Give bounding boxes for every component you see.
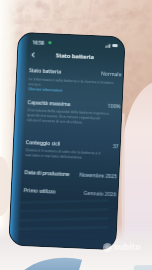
staticText: Data di produzione bbox=[24, 169, 70, 178]
staticText: Novembre 2025 bbox=[79, 172, 118, 180]
staticText: 16:58 bbox=[32, 39, 45, 46]
staticText: Le informazioni sulla batteria e la rica… bbox=[28, 76, 114, 90]
staticText: Conteggio cicli bbox=[26, 139, 61, 148]
staticText: subito bbox=[114, 241, 141, 253]
staticText: Gennaio 2026 bbox=[83, 190, 117, 198]
staticText: Stato batteria bbox=[56, 51, 95, 61]
staticText: 37 bbox=[113, 143, 119, 150]
button[interactable]: Back bbox=[29, 50, 38, 60]
staticText: Una misura della capacità della batteria… bbox=[27, 107, 109, 126]
staticText: Stato batteria bbox=[29, 67, 61, 76]
button[interactable]: Stato batteria bbox=[29, 66, 122, 78]
staticText: Primo utilizzo bbox=[23, 187, 56, 195]
staticText: 100% bbox=[107, 103, 121, 110]
staticText: Normale bbox=[101, 70, 122, 78]
staticText: Capacità massima bbox=[27, 99, 71, 108]
button[interactable]: Primo utilizzo bbox=[23, 186, 117, 198]
button[interactable]: Data di produzione bbox=[24, 168, 118, 180]
staticText: Ulteriori informazioni bbox=[28, 86, 63, 93]
button[interactable]: Conteggio cicli bbox=[26, 138, 119, 150]
staticText: Questo è il numero di volte che la batte… bbox=[25, 147, 102, 160]
button[interactable]: Capacità massima bbox=[27, 98, 121, 110]
